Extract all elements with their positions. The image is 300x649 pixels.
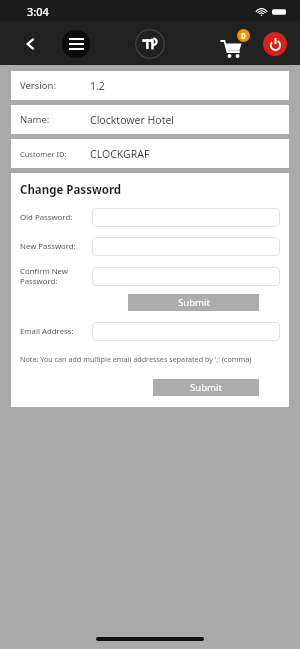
staticText: Email Address: — [20, 326, 74, 337]
button[interactable]: Menu — [62, 30, 90, 58]
staticText: New Password: — [20, 241, 76, 252]
staticText: Submit — [178, 296, 210, 309]
button[interactable]: Name: — [11, 105, 289, 134]
staticText: CLOCKGRAF — [90, 147, 150, 161]
staticText: Customer ID: — [20, 149, 67, 159]
staticText: Confirm New Password: — [20, 266, 68, 286]
button[interactable]: Submit — [128, 294, 259, 311]
button[interactable] — [92, 208, 280, 227]
staticText: Old Password: — [20, 212, 73, 223]
button[interactable] — [92, 267, 280, 286]
button[interactable] — [92, 237, 280, 256]
button[interactable]: Version: — [11, 71, 289, 100]
staticText: Note: You can add multiple email address… — [20, 354, 252, 364]
button[interactable]: Logo — [134, 28, 166, 60]
staticText: 3:04 — [27, 4, 49, 19]
button[interactable]: Submit — [153, 379, 259, 396]
button[interactable]: Cart — [220, 29, 250, 59]
button[interactable] — [92, 322, 280, 341]
staticText: Submit — [190, 381, 222, 394]
button[interactable]: Power off — [263, 32, 287, 56]
button[interactable]: Back — [18, 31, 44, 57]
staticText: Name: — [20, 113, 50, 126]
staticText: Clocktower Hotel — [90, 113, 175, 127]
button[interactable]: Customer ID: — [11, 139, 289, 168]
staticText: 0 — [241, 30, 246, 41]
staticText: 1.2 — [90, 79, 105, 93]
staticText: Version: — [20, 79, 56, 92]
staticText: Change Password — [20, 182, 122, 198]
